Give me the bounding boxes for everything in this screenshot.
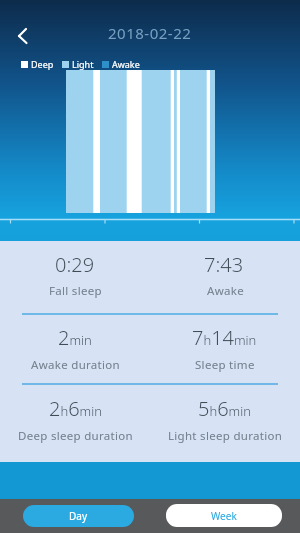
staticText: Deep sleep duration — [18, 428, 133, 444]
staticText: 7:43 — [204, 251, 244, 278]
button[interactable]: Week — [166, 504, 282, 527]
staticText: 2h6min — [49, 395, 102, 422]
staticText: Sleep time — [195, 357, 255, 373]
button[interactable]: Day — [23, 505, 134, 527]
staticText: Week — [211, 509, 237, 523]
staticText: Day — [69, 509, 88, 523]
staticText: 2min — [58, 324, 92, 351]
staticText: Awake — [207, 283, 244, 299]
staticText: 2018-02-22 — [108, 23, 192, 43]
button[interactable] — [10, 26, 34, 46]
staticText: Awake duration — [31, 357, 120, 373]
staticText: 5h6min — [198, 395, 251, 422]
staticText: Deep — [31, 58, 54, 70]
staticText: 0:29 — [55, 251, 95, 278]
staticText: Light — [72, 58, 94, 70]
staticText: 7h14min — [192, 324, 257, 351]
staticText: Fall sleep — [49, 283, 102, 299]
staticText: Light sleep duration — [168, 428, 283, 444]
staticText: Awake — [112, 58, 140, 70]
